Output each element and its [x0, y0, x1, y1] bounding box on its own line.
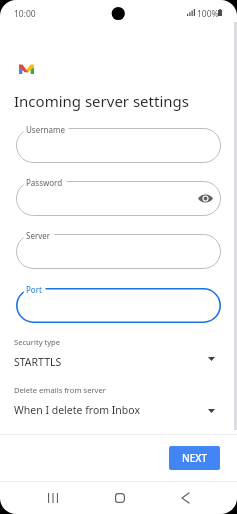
button[interactable]: NEXT	[169, 446, 220, 470]
other: Expand	[208, 357, 215, 361]
button[interactable]	[16, 128, 221, 163]
button[interactable]: Delete emails from server	[0, 385, 237, 419]
button[interactable]: Recents	[37, 482, 68, 513]
button[interactable]	[16, 234, 221, 269]
staticText: Incoming server settings	[14, 91, 189, 111]
button[interactable]	[16, 288, 221, 323]
staticText: When I delete from Inbox	[14, 403, 140, 417]
button[interactable]: Back	[170, 482, 201, 513]
staticText: 10:00	[14, 8, 36, 20]
button[interactable]: Home	[104, 482, 135, 513]
staticText: Delete emails from server	[14, 385, 106, 395]
staticText: NEXT	[182, 451, 208, 465]
other: Expand	[208, 409, 215, 413]
button[interactable]: Show password	[16, 181, 221, 216]
staticText: 100%	[197, 8, 219, 20]
button[interactable]: Security type	[0, 337, 237, 371]
staticText: STARTTLS	[14, 355, 62, 369]
staticText: Security type	[14, 337, 61, 347]
other: Show password	[198, 194, 213, 203]
